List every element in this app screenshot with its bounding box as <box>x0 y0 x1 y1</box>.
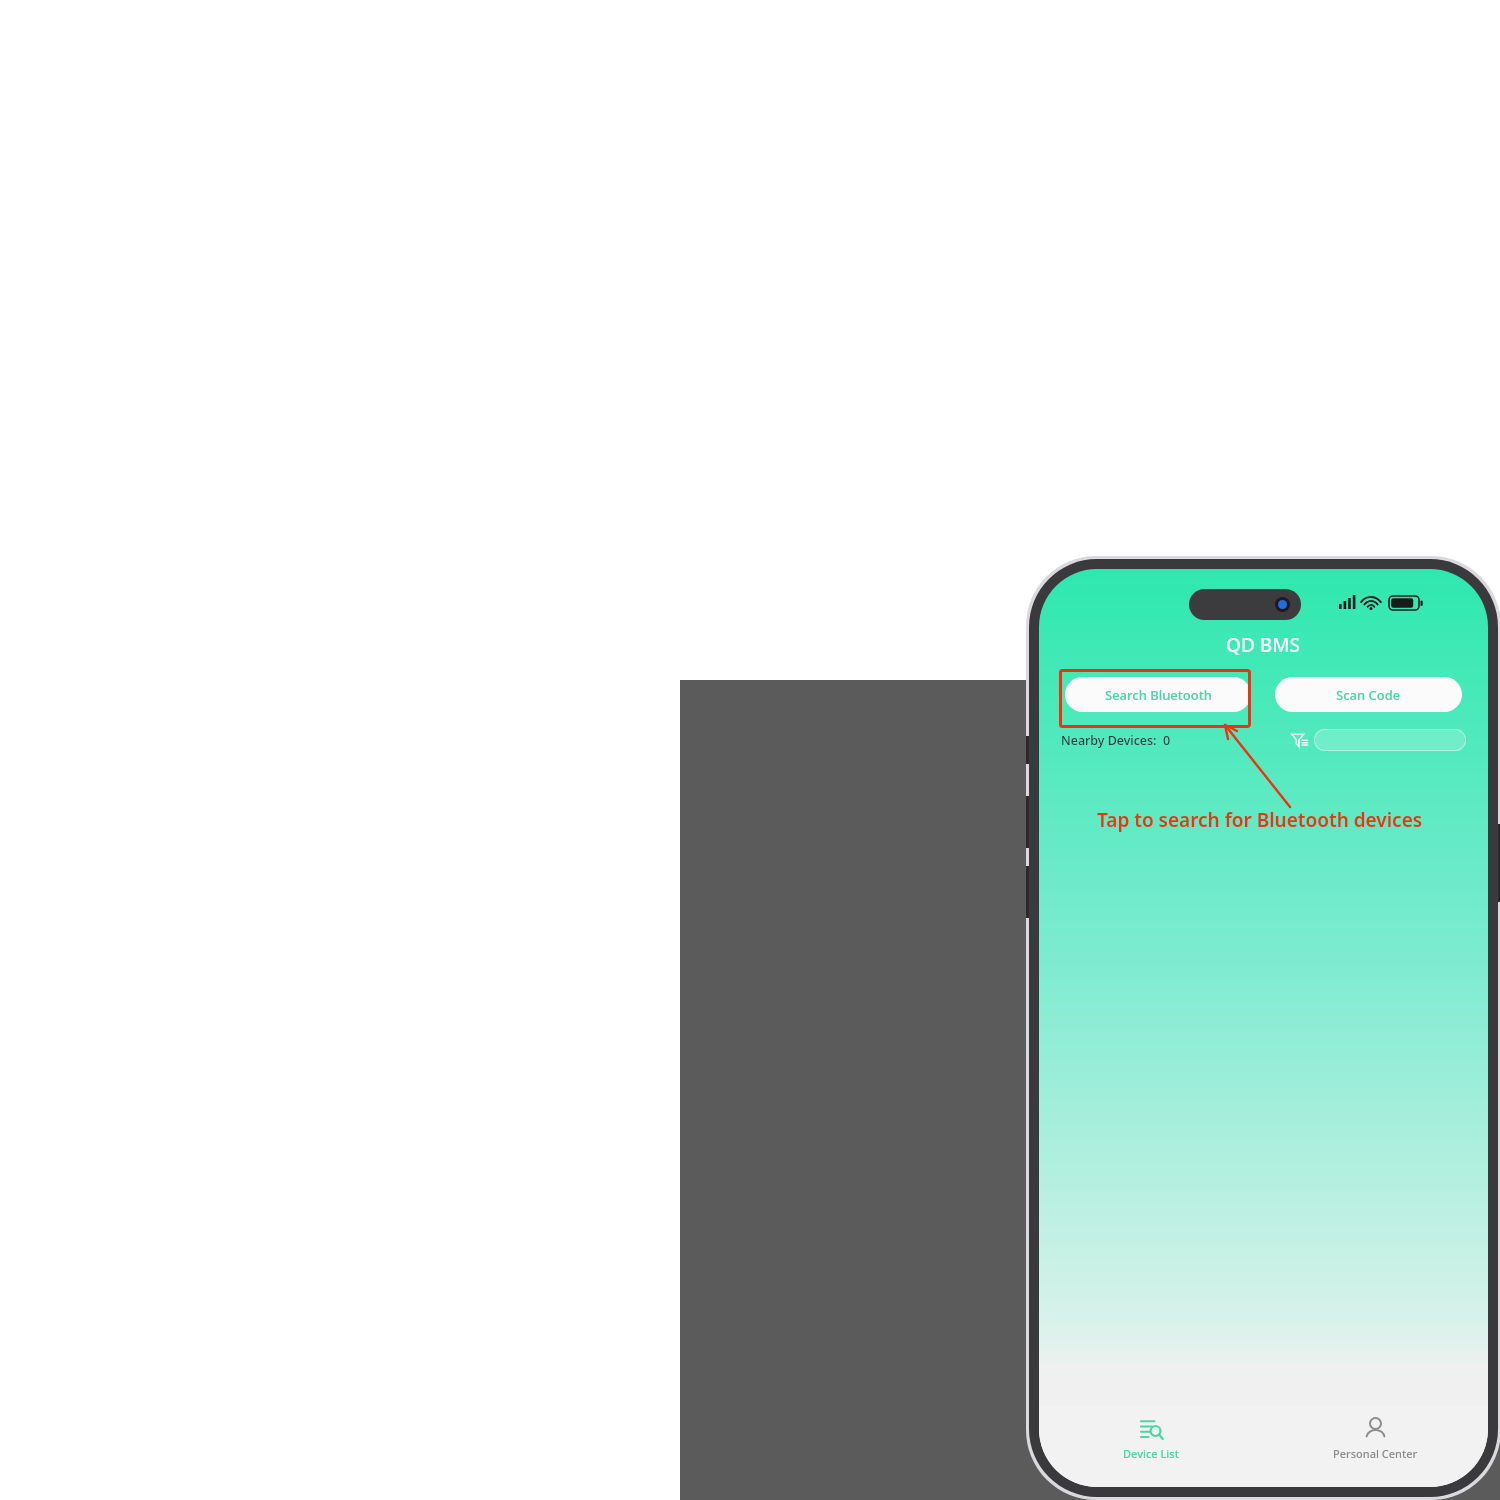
button[interactable]: Scan Code <box>1275 677 1462 712</box>
button[interactable] <box>1314 729 1466 751</box>
staticText: Device List <box>1123 1446 1179 1461</box>
staticText: Nearby Devices: 0 <box>1061 732 1171 749</box>
staticText: Personal Center <box>1333 1446 1418 1461</box>
staticText: Tap to search for Bluetooth devices <box>1097 807 1423 833</box>
button[interactable]: Filter <box>1289 729 1311 751</box>
button[interactable]: Personal Center <box>1263 1405 1488 1487</box>
staticText: Search Bluetooth <box>1105 686 1212 704</box>
staticText: Scan Code <box>1336 686 1401 704</box>
staticText: QD BMS <box>1226 632 1301 658</box>
button[interactable]: Device List <box>1039 1405 1263 1487</box>
button[interactable]: Search Bluetooth <box>1065 677 1251 712</box>
